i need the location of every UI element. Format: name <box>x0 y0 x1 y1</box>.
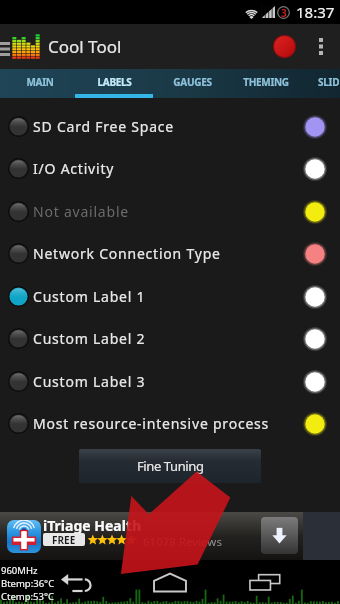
button[interactable]: MAIN <box>3 69 77 94</box>
staticText: THEMING <box>243 75 289 89</box>
staticText: MAIN <box>26 75 54 89</box>
staticText: Cool Tool <box>48 35 122 58</box>
staticText: GAUGES <box>173 75 212 89</box>
button[interactable]: Most resource-intensive process <box>0 402 340 445</box>
button[interactable]: Back <box>55 560 97 604</box>
button[interactable]: Network Connection Type <box>0 232 340 275</box>
staticText: Not available <box>33 202 129 221</box>
staticText: Network Connection Type <box>33 244 221 263</box>
staticText: FREE <box>52 533 76 546</box>
button[interactable]: SLIDERS <box>307 69 340 94</box>
staticText: 3 <box>281 6 287 19</box>
staticText: iTriage Health <box>43 516 142 535</box>
staticText: Ctemp:53°C <box>1 590 55 603</box>
staticText: LABELS <box>97 75 132 89</box>
button[interactable]: Menu <box>0 24 11 69</box>
button[interactable]: Not available <box>0 190 340 233</box>
button[interactable]: THEMING <box>229 69 303 94</box>
button[interactable]: More options <box>306 24 336 69</box>
button[interactable]: GAUGES <box>155 69 229 94</box>
button[interactable]: iTriage Health <box>0 512 303 560</box>
button[interactable]: Home <box>149 560 191 604</box>
staticText: I/O Activity <box>33 159 115 178</box>
staticText: Custom Label 3 <box>33 372 146 391</box>
button[interactable]: LABELS <box>77 69 151 94</box>
staticText: 61078 Reviews <box>143 534 222 550</box>
button[interactable]: Record <box>262 24 306 69</box>
button[interactable]: I/O Activity <box>0 147 340 190</box>
staticText: Custom Label 1 <box>33 287 146 306</box>
staticText: Most resource-intensive process <box>33 414 270 433</box>
staticText: SLIDERS <box>318 75 340 89</box>
button[interactable]: Fine Tuning <box>79 449 261 483</box>
staticText: SD Card Free Space <box>33 117 175 136</box>
staticText: Btemp:36°C <box>1 577 55 590</box>
button[interactable]: Custom Label 1 <box>0 275 340 318</box>
staticText: 960MHz <box>1 564 38 577</box>
button[interactable]: Recents <box>244 560 286 604</box>
staticText: Fine Tuning <box>137 457 204 475</box>
staticText: 18:37 <box>296 2 335 22</box>
staticText: Custom Label 2 <box>33 329 146 348</box>
button[interactable]: Custom Label 2 <box>0 317 340 360</box>
button[interactable]: Install <box>261 517 298 554</box>
button[interactable]: SD Card Free Space <box>0 105 340 148</box>
button[interactable]: Custom Label 3 <box>0 360 340 403</box>
